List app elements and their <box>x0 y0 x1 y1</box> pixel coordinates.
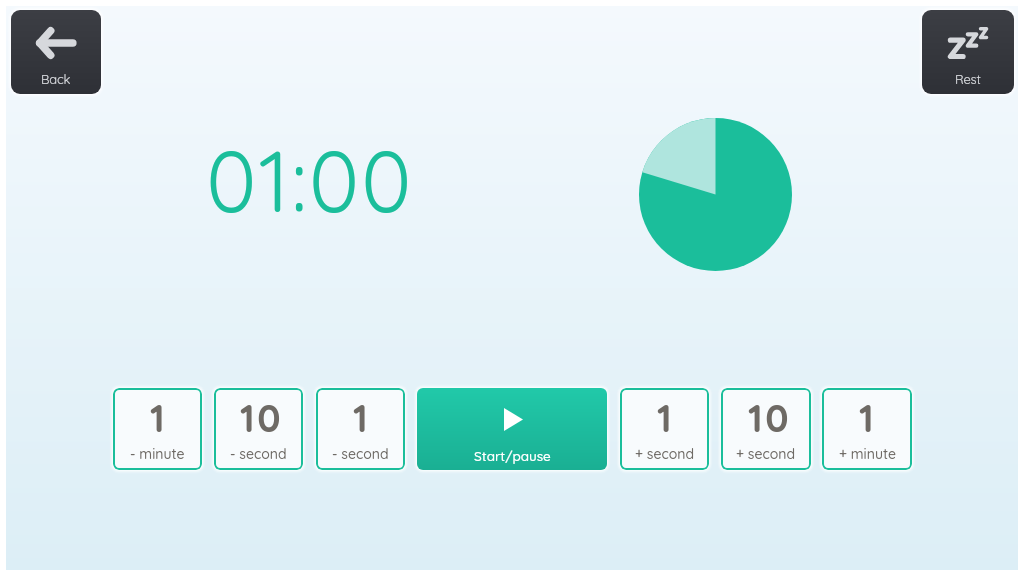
staticText: Start/pause <box>474 447 551 464</box>
staticText: 1 <box>150 394 168 442</box>
staticText: - second <box>230 445 287 463</box>
staticText: 10 <box>748 394 791 442</box>
staticText: - minute <box>130 445 185 463</box>
button[interactable]: Back <box>11 10 101 94</box>
staticText: 1 <box>657 394 675 442</box>
button[interactable]: Start/pause <box>417 388 607 470</box>
button[interactable]: 1 <box>620 388 709 470</box>
staticText: 01:00 <box>206 127 414 233</box>
staticText: + second <box>736 445 796 463</box>
staticText: + minute <box>839 445 896 463</box>
button[interactable]: 1 <box>822 388 912 470</box>
button[interactable]: 1 <box>316 388 405 470</box>
button[interactable]: 10 <box>214 388 303 470</box>
staticText: + second <box>635 445 695 463</box>
staticText: 10 <box>240 394 283 442</box>
staticText: 1 <box>353 394 371 442</box>
button[interactable]: 10 <box>721 388 811 470</box>
staticText: Rest <box>955 71 981 87</box>
staticText: - second <box>332 445 389 463</box>
button[interactable]: 1 <box>113 388 202 470</box>
button[interactable]: Rest <box>922 10 1014 94</box>
staticText: Back <box>41 71 71 87</box>
staticText: 1 <box>859 394 877 442</box>
